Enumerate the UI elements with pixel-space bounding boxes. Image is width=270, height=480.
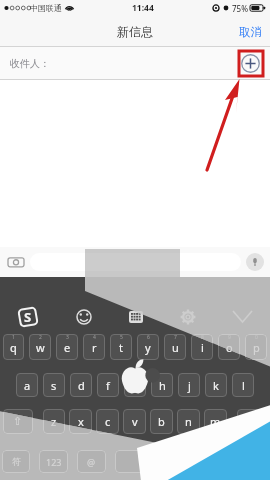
button[interactable]: 3 [56,334,78,360]
button[interactable]: d [70,373,92,397]
button[interactable]: 7 [164,334,186,360]
button[interactable] [115,450,268,473]
button[interactable]: 0 [245,334,267,360]
button[interactable]: j [178,373,200,397]
staticText: c [105,414,111,429]
button[interactable]: l [232,373,254,397]
button[interactable]: 4 [83,334,105,360]
staticText: 4 [93,334,96,341]
button[interactable]: l [232,373,254,397]
button[interactable]: ⌫ [237,409,267,434]
button[interactable]: s [43,373,65,397]
button[interactable]: 5 [110,334,132,360]
button[interactable]: c [96,409,119,434]
button[interactable]: Add recipient [241,54,260,73]
button[interactable]: j [178,373,200,397]
button[interactable]: Emoji [76,309,92,325]
button[interactable]: k [205,373,227,397]
button[interactable] [30,253,241,271]
staticText: y [145,340,151,355]
button[interactable]: g [124,373,146,397]
button[interactable]: 取消 [231,19,270,45]
button[interactable]: ⌫ [237,409,267,434]
button[interactable]: m [204,409,227,434]
button[interactable]: a [16,373,38,397]
button[interactable]: 1 [3,334,24,360]
staticText: 11:44 [132,2,154,14]
button[interactable]: Settings [180,309,196,325]
button[interactable]: a [16,373,38,397]
button[interactable]: n [177,409,200,434]
button[interactable]: Keyboard layout [129,311,143,323]
button[interactable]: ⇧ [3,409,33,434]
button[interactable]: f [97,373,119,397]
button[interactable]: Voice input [246,253,264,271]
staticText: h [159,378,166,393]
button[interactable]: 符 [2,450,30,473]
button[interactable]: h [151,373,173,397]
button[interactable]: Settings [180,309,196,325]
button[interactable]: v [123,409,146,434]
button[interactable]: 9 [218,334,240,360]
button[interactable]: 4 [83,334,105,360]
button[interactable]: Voice input [246,253,264,271]
button[interactable]: c [96,409,119,434]
staticText: p [253,340,260,355]
staticText: f [106,378,110,393]
staticText: z [51,414,57,429]
staticText: h [159,378,166,393]
staticText: z [51,414,57,429]
button[interactable]: 3 [56,334,78,360]
button[interactable]: k [205,373,227,397]
button[interactable]: b [150,409,173,434]
button[interactable]: Hide keyboard [233,311,252,322]
button[interactable]: 5 [110,334,132,360]
button[interactable]: x [69,409,92,434]
button[interactable]: Camera [6,252,26,272]
staticText: d [78,378,85,393]
button[interactable]: s [43,373,65,397]
button[interactable]: n [177,409,200,434]
button[interactable]: 6 [137,334,159,360]
button[interactable]: 1 [3,334,24,360]
button[interactable]: 8 [191,334,213,360]
button[interactable]: ⇧ [3,409,33,434]
button[interactable]: @ [77,450,106,473]
button[interactable]: 取消 [231,19,270,45]
button[interactable]: Hide keyboard [233,311,252,322]
staticText: b [158,414,165,429]
button[interactable]: Add recipient [241,54,260,73]
button[interactable]: v [123,409,146,434]
button[interactable]: h [151,373,173,397]
button[interactable]: 123 [39,450,68,473]
button[interactable]: d [70,373,92,397]
button[interactable]: Input method [17,306,39,328]
button[interactable]: Camera [6,252,26,272]
staticText: ⇧ [13,415,23,428]
button[interactable] [115,450,268,473]
button[interactable]: 6 [137,334,159,360]
button[interactable]: 2 [29,334,51,360]
staticText: 符 [12,456,21,467]
staticText: 2 [39,334,42,341]
button[interactable]: 123 [39,450,68,473]
button[interactable]: m [204,409,227,434]
button[interactable]: 9 [218,334,240,360]
button[interactable]: 7 [164,334,186,360]
button[interactable]: Keyboard layout [129,311,143,323]
button[interactable]: z [43,409,65,434]
button[interactable]: g [124,373,146,397]
button[interactable]: b [150,409,173,434]
button[interactable]: 2 [29,334,51,360]
button[interactable]: Input method [17,306,39,328]
button[interactable]: 8 [191,334,213,360]
button[interactable]: Emoji [76,309,92,325]
button[interactable]: @ [77,450,106,473]
staticText: l [242,378,245,393]
button[interactable]: 符 [2,450,30,473]
button[interactable]: 0 [245,334,267,360]
button[interactable] [30,253,241,271]
button[interactable]: z [43,409,65,434]
button[interactable]: f [97,373,119,397]
button[interactable]: x [69,409,92,434]
